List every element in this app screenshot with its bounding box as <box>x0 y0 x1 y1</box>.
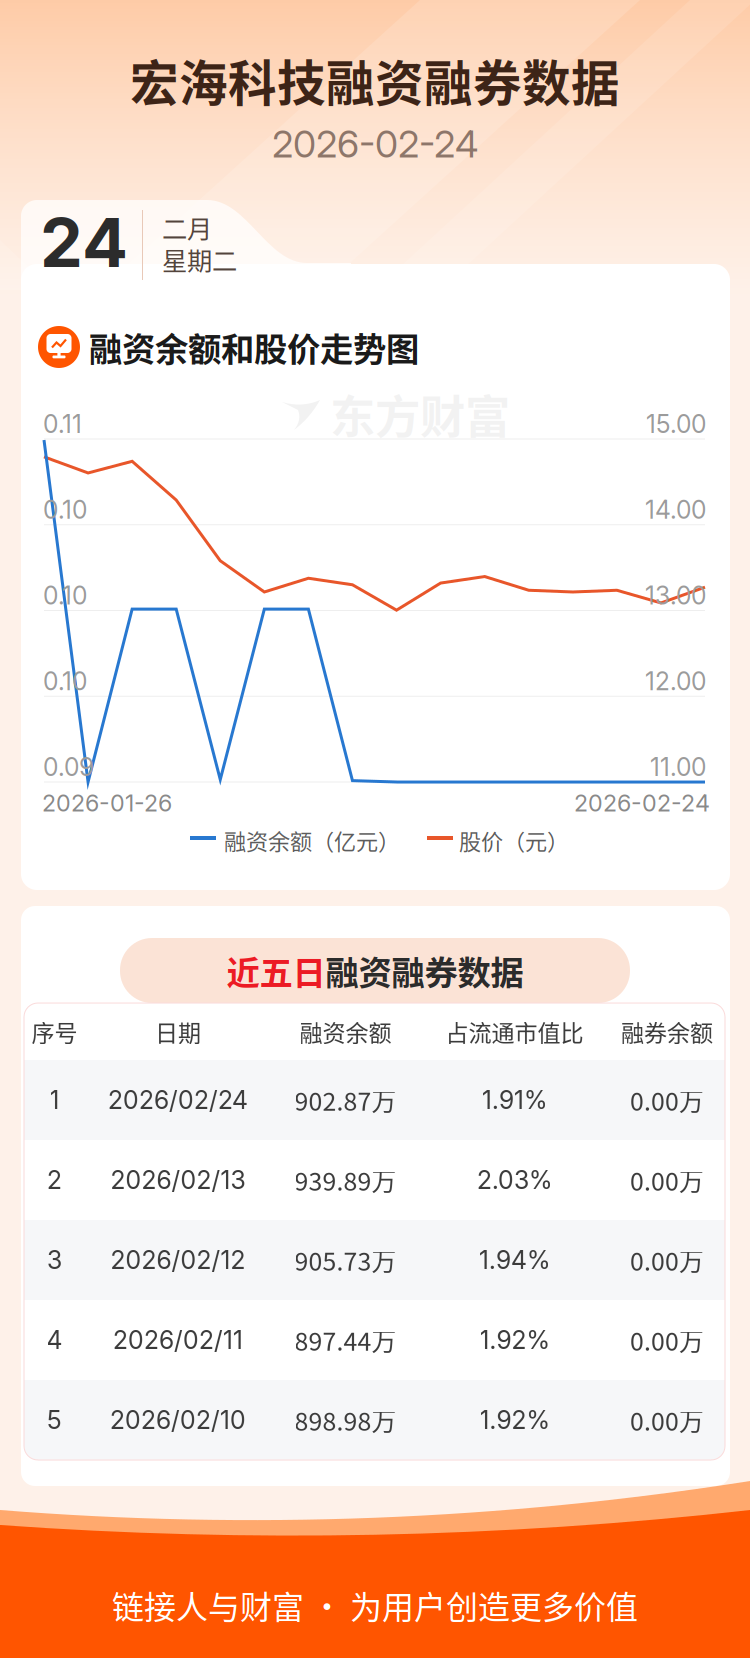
staticText: 融资融券数据 <box>325 946 523 995</box>
staticText: 5 <box>47 1405 62 1435</box>
staticText: 2026-02-24 <box>272 121 478 167</box>
staticText: 星期二 <box>162 241 237 278</box>
staticText: 1.91% <box>482 1085 547 1115</box>
staticText: 2026-02-24 <box>574 789 710 817</box>
staticText: 897.44万 <box>294 1322 396 1358</box>
staticText: 1.94% <box>479 1245 550 1275</box>
staticText: 宏海科技融资融券数据 <box>130 45 620 115</box>
staticText: 0.09 <box>43 752 94 782</box>
staticText: 2026/02/12 <box>110 1245 245 1275</box>
staticText: 股价（元） <box>459 824 569 856</box>
staticText: 2.03% <box>477 1165 552 1195</box>
staticText: 0.10 <box>43 581 87 610</box>
staticText: 3 <box>47 1245 62 1275</box>
staticText: 2 <box>47 1165 62 1195</box>
staticText: 序号 <box>31 1015 77 1048</box>
staticText: 近五日 <box>226 946 325 995</box>
staticText: 2026/02/11 <box>113 1325 243 1355</box>
staticText: 13.00 <box>645 581 706 610</box>
staticText: 0.00万 <box>630 1322 704 1358</box>
staticText: 0.11 <box>43 409 82 439</box>
staticText: 链接人与财富 · 为用户创造更多价值 <box>112 1582 638 1628</box>
staticText: 15.00 <box>646 409 706 439</box>
staticText: 融资余额（亿元） <box>224 824 400 856</box>
staticText: 4 <box>46 1325 62 1355</box>
staticText: 14.00 <box>645 495 706 525</box>
staticText: 0.10 <box>43 495 87 525</box>
staticText: 0.00万 <box>630 1162 704 1198</box>
staticText: 融资余额和股价走势图 <box>89 323 419 371</box>
staticText: 1 <box>49 1085 59 1115</box>
staticText: 融券余额 <box>621 1015 713 1048</box>
staticText: 905.73万 <box>294 1242 396 1278</box>
staticText: 11.00 <box>650 752 706 782</box>
staticText: 0.00万 <box>630 1242 704 1278</box>
staticText: 1.92% <box>479 1405 549 1435</box>
staticText: 0.00万 <box>630 1402 704 1438</box>
staticText: 0.00万 <box>630 1082 704 1118</box>
staticText: 日期 <box>155 1015 201 1048</box>
staticText: 1.92% <box>479 1325 549 1355</box>
staticText: 东方财富 <box>330 381 510 447</box>
staticText: 2026/02/24 <box>108 1085 248 1115</box>
staticText: 939.89万 <box>294 1162 396 1198</box>
staticText: 898.98万 <box>294 1402 396 1438</box>
staticText: 融资余额 <box>299 1015 391 1048</box>
staticText: 二月 <box>162 209 212 246</box>
staticText: 2026/02/10 <box>110 1405 246 1435</box>
staticText: 0.10 <box>43 666 87 696</box>
staticText: 902.87万 <box>294 1082 396 1118</box>
staticText: 2026/02/13 <box>110 1165 245 1195</box>
staticText: 2026-01-26 <box>42 789 172 817</box>
staticText: 占流通市值比 <box>445 1015 583 1048</box>
staticText: 12.00 <box>645 666 706 696</box>
staticText: 24 <box>40 201 128 283</box>
